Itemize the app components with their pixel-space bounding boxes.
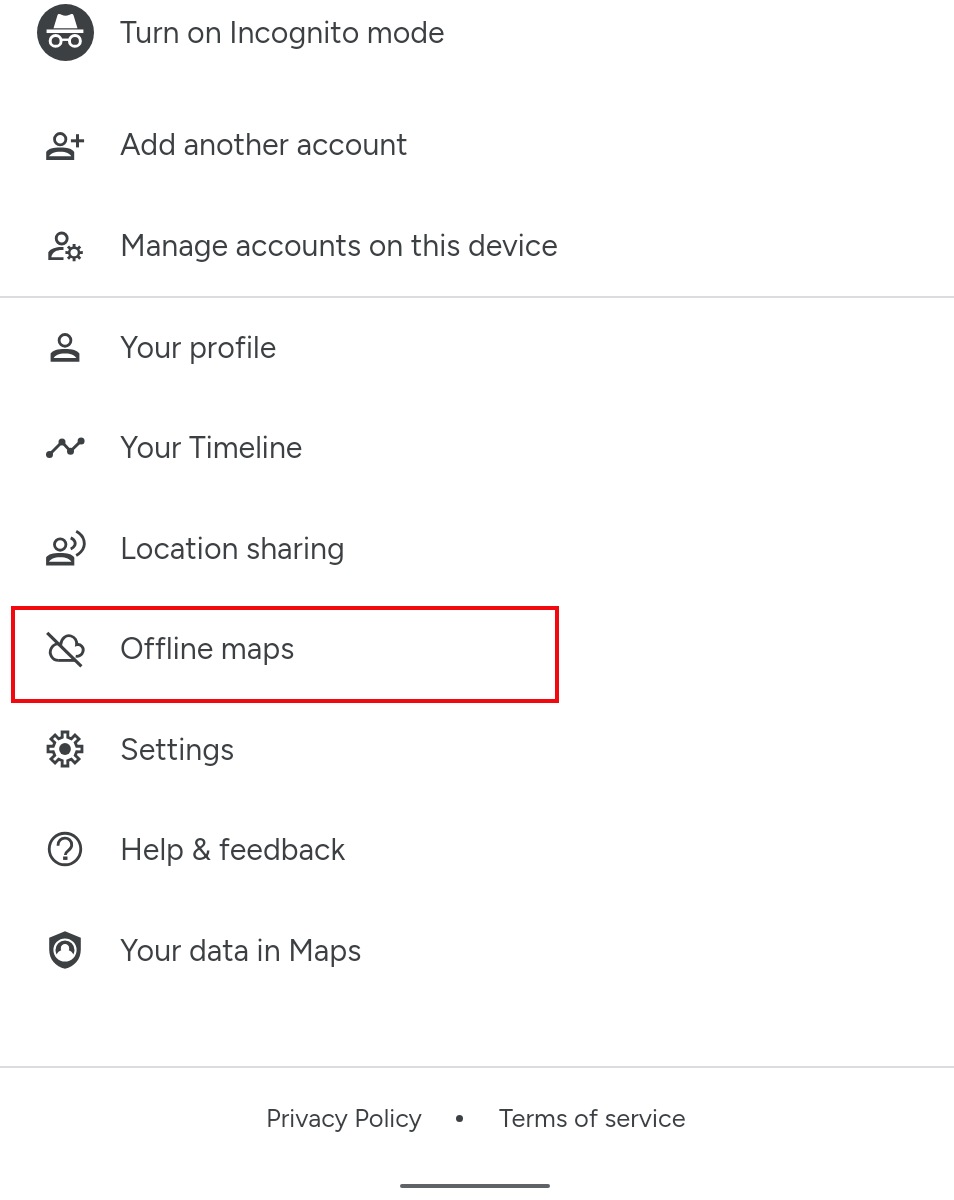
staticText: Your Timeline <box>120 429 303 465</box>
button[interactable]: Your profile <box>0 297 954 397</box>
button[interactable]: Settings <box>0 699 954 799</box>
button[interactable]: Manage accounts on this device <box>0 195 954 295</box>
staticText: Settings <box>120 731 235 767</box>
staticText: Terms of service <box>499 1103 686 1134</box>
button[interactable]: Offline maps <box>0 598 954 698</box>
button[interactable]: Turn on Incognito mode <box>0 0 954 82</box>
button[interactable]: Add another account <box>0 94 954 194</box>
staticText: Your profile <box>120 329 277 365</box>
button[interactable]: Terms of service <box>485 1088 700 1148</box>
staticText: Your data in Maps <box>120 932 362 968</box>
button[interactable]: Your Timeline <box>0 397 954 497</box>
button[interactable]: Location sharing <box>0 498 954 598</box>
staticText: Turn on Incognito mode <box>120 14 445 50</box>
staticText: Offline maps <box>120 630 295 666</box>
staticText: Location sharing <box>120 530 345 566</box>
staticText: Help & feedback <box>120 831 346 867</box>
staticText: Privacy Policy <box>266 1103 423 1134</box>
button[interactable]: Help & feedback <box>0 799 954 899</box>
staticText: Add another account <box>120 126 408 162</box>
staticText: Manage accounts on this device <box>120 227 558 263</box>
button[interactable]: Your data in Maps <box>0 900 954 1000</box>
button[interactable]: Privacy Policy <box>252 1088 437 1148</box>
